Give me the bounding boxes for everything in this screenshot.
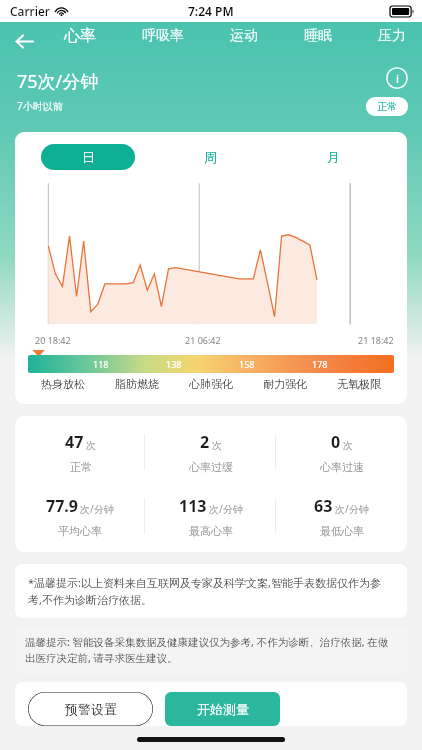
staticText: 次: [86, 439, 96, 452]
button[interactable]: 月: [272, 144, 395, 170]
button[interactable]: 周: [149, 144, 272, 170]
staticText: 最低心率: [320, 524, 364, 538]
button[interactable]: Back: [6, 23, 42, 59]
staticText: 最高心率: [189, 524, 233, 538]
staticText: 呼吸率: [142, 27, 184, 45]
staticText: 正常: [377, 100, 397, 113]
staticText: 0: [331, 431, 341, 453]
staticText: Carrier: [10, 3, 50, 19]
button[interactable]: 正常: [366, 97, 408, 116]
button[interactable]: 开始测量: [165, 692, 280, 726]
staticText: 压力: [378, 27, 406, 45]
staticText: 21 06:42: [185, 334, 221, 346]
staticText: 心率过速: [320, 460, 364, 474]
staticText: 无氧极限: [337, 377, 381, 391]
staticText: 次/分钟: [209, 502, 243, 516]
staticText: 开始测量: [197, 701, 249, 717]
staticText: 21 18:42: [358, 334, 394, 346]
staticText: 20 18:42: [35, 334, 71, 346]
staticText: 正常: [70, 460, 92, 474]
button[interactable]: 心率: [62, 22, 98, 50]
staticText: 7小时以前: [17, 99, 63, 113]
staticText: 日: [82, 149, 95, 165]
staticText: 47: [65, 431, 84, 453]
staticText: 周: [204, 149, 217, 165]
staticText: 心率过缓: [189, 460, 233, 474]
staticText: 63: [314, 495, 333, 517]
button[interactable]: 日: [41, 144, 135, 170]
staticText: 118: [93, 358, 109, 370]
staticText: 158: [239, 358, 255, 370]
staticText: 次/分钟: [335, 502, 369, 516]
staticText: 平均心率: [58, 524, 102, 538]
button[interactable]: Info: [386, 67, 408, 89]
staticText: 138: [166, 358, 182, 370]
staticText: 7:24 PM: [188, 3, 234, 19]
button[interactable]: 运动: [228, 23, 260, 49]
staticText: 178: [312, 358, 328, 370]
staticText: 运动: [230, 27, 258, 45]
staticText: 2: [200, 431, 210, 453]
staticText: 心肺强化: [189, 377, 233, 391]
staticText: 温馨提示: 智能设备采集数据及健康建议仅为参考, 不作为诊断、治疗依据, 在做出…: [25, 635, 397, 665]
staticText: 77.9: [46, 495, 78, 517]
staticText: 睡眠: [304, 27, 332, 45]
staticText: i: [396, 71, 399, 86]
staticText: 耐力强化: [263, 377, 307, 391]
staticText: 次: [212, 439, 222, 452]
staticText: 月: [327, 149, 340, 165]
button[interactable]: 睡眠: [302, 23, 334, 49]
button[interactable]: 呼吸率: [140, 23, 186, 49]
staticText: 心率: [64, 26, 96, 46]
staticText: 次/分钟: [80, 502, 114, 516]
staticText: 次: [343, 439, 353, 452]
button[interactable]: 压力: [376, 23, 408, 49]
button[interactable]: 预警设置: [28, 692, 153, 726]
staticText: 热身放松: [41, 377, 85, 391]
staticText: 75次/分钟: [17, 69, 99, 94]
staticText: 脂肪燃烧: [115, 377, 159, 391]
staticText: *温馨提示:以上资料来自互联网及专家及科学文案,智能手表数据仅作为参考,不作为诊…: [28, 575, 394, 607]
staticText: 预警设置: [65, 701, 117, 717]
staticText: 113: [179, 495, 207, 517]
